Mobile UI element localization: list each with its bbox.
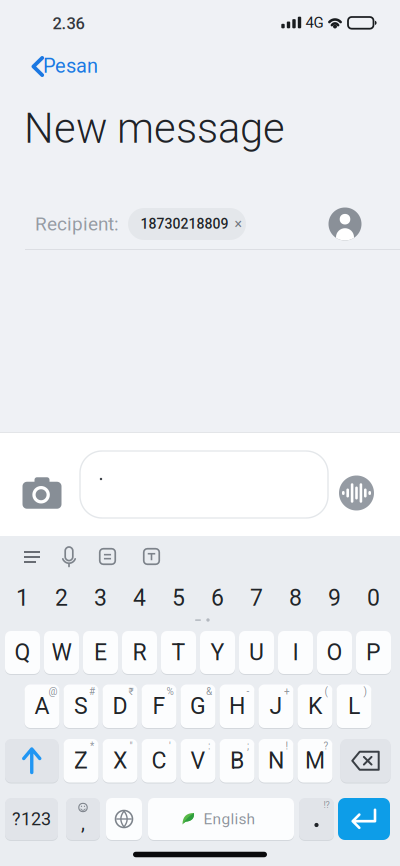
staticText: 0 (367, 584, 380, 611)
staticText: L (348, 693, 360, 720)
staticText: % (166, 686, 173, 697)
staticText: 3 (94, 584, 107, 611)
staticText: S (74, 693, 88, 720)
button[interactable]: L (336, 684, 371, 728)
staticText: English (203, 810, 255, 828)
staticText: A (34, 693, 49, 720)
staticText: Recipient: (35, 213, 119, 235)
button[interactable]: B (219, 739, 254, 782)
button[interactable]: O (317, 631, 352, 674)
button[interactable]: X (102, 739, 137, 782)
staticText: 5 (172, 584, 185, 611)
button[interactable]: Back (24, 49, 96, 83)
button[interactable]: Z (63, 739, 98, 782)
staticText: 18730218809 (140, 216, 228, 232)
button[interactable]: Period (299, 798, 334, 840)
button[interactable]: N (258, 739, 293, 782)
staticText: : (208, 740, 210, 752)
staticText: # (89, 686, 95, 697)
staticText: 7 (250, 584, 263, 611)
button[interactable]: Q (5, 631, 40, 674)
button[interactable]: 9 (317, 581, 352, 615)
button[interactable]: Remove recipient 18730218809 (128, 208, 246, 240)
staticText: J (269, 693, 282, 720)
staticText: ; (247, 740, 249, 752)
button[interactable]: K (297, 684, 332, 728)
staticText: D (112, 693, 127, 720)
button[interactable]: R (122, 631, 157, 674)
button[interactable]: Text editing (144, 549, 159, 564)
button[interactable]: U (239, 631, 274, 674)
button[interactable]: V (180, 739, 215, 782)
staticText: Y (210, 639, 224, 666)
button[interactable]: Camera (22, 477, 62, 509)
staticText: !? (323, 800, 329, 810)
button[interactable]: Delete (340, 739, 390, 782)
button[interactable]: Y (200, 631, 235, 674)
button[interactable]: 6 (200, 581, 235, 615)
button[interactable]: J (258, 684, 293, 728)
button[interactable]: P (356, 631, 391, 674)
staticText: & (206, 686, 212, 697)
staticText: 4 (133, 584, 146, 611)
button[interactable]: Return (338, 798, 390, 840)
button[interactable]: S (63, 684, 98, 728)
button[interactable]: 8 (278, 581, 313, 615)
staticText: 1 (16, 584, 29, 611)
button[interactable]: I (278, 631, 313, 674)
staticText: ( (324, 686, 327, 697)
staticText: - (246, 686, 249, 697)
button[interactable]: Clipboard (100, 549, 115, 564)
button[interactable]: Switch language (106, 798, 142, 840)
staticText: T (171, 639, 185, 666)
staticText: * (90, 740, 94, 752)
button[interactable]: T (161, 631, 196, 674)
button[interactable]: Space (148, 798, 294, 840)
button[interactable]: F (141, 684, 176, 728)
button[interactable]: Voice typing (58, 547, 80, 567)
button[interactable]: W (44, 631, 79, 674)
button[interactable]: G (180, 684, 215, 728)
button[interactable]: Choose contact (328, 207, 361, 240)
staticText: E (94, 639, 107, 666)
button[interactable]: 4 (122, 581, 157, 615)
staticText: B (230, 747, 244, 774)
button[interactable]: Message text field (80, 451, 328, 518)
button[interactable]: A (24, 684, 59, 728)
staticText: I (292, 639, 298, 666)
staticText: Z (74, 747, 88, 774)
button[interactable]: Voice message (339, 475, 374, 510)
staticText: V (190, 747, 205, 774)
staticText: ₹ (128, 686, 133, 697)
button[interactable]: M (297, 739, 332, 782)
button[interactable]: 2 (44, 581, 79, 615)
staticText: " (129, 740, 132, 752)
staticText: ' (169, 740, 171, 752)
button[interactable]: 0 (356, 581, 391, 615)
button[interactable]: , (66, 798, 100, 840)
staticText: G (190, 693, 206, 720)
staticText: 6 (211, 584, 224, 611)
staticText: @ (48, 686, 57, 697)
button[interactable]: 3 (83, 581, 118, 615)
staticText: × (234, 216, 241, 232)
button[interactable]: 1 (5, 581, 40, 615)
staticText: U (249, 639, 264, 666)
button[interactable]: Keyboard menu (23, 551, 41, 563)
staticText: ! (285, 740, 288, 752)
button[interactable]: ?123 (5, 798, 58, 840)
staticText: F (152, 693, 165, 720)
button[interactable]: H (219, 684, 254, 728)
staticText: + (284, 686, 290, 697)
button[interactable]: E (83, 631, 118, 674)
button[interactable]: D (102, 684, 137, 728)
button[interactable]: C (141, 739, 176, 782)
button[interactable]: Shift (5, 739, 58, 782)
staticText: 8 (289, 584, 302, 611)
staticText: C (151, 747, 166, 774)
button[interactable]: 5 (161, 581, 196, 615)
button[interactable]: 7 (239, 581, 274, 615)
staticText: P (366, 639, 381, 666)
staticText: 4G (305, 14, 323, 31)
staticText: K (308, 693, 322, 720)
